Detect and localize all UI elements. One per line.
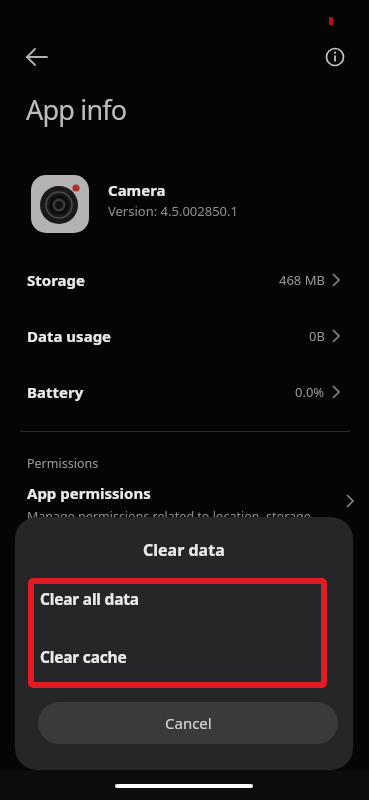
staticText: App info xyxy=(26,91,127,128)
staticText: Data usage xyxy=(27,326,112,346)
staticText: 468 MB xyxy=(279,271,325,289)
button[interactable]: App permissions xyxy=(0,472,369,528)
staticText: Clear all data xyxy=(40,588,139,609)
staticText: Cancel xyxy=(165,713,212,733)
staticText: Clear data xyxy=(143,539,225,561)
button[interactable] xyxy=(17,44,57,70)
staticText: Permissions xyxy=(27,455,99,472)
staticText: Storage xyxy=(27,270,85,290)
button[interactable]: Clear cache xyxy=(15,630,353,686)
staticText: App permissions xyxy=(27,483,151,503)
staticText: Version: 4.5.002850.1 xyxy=(108,202,238,220)
staticText: Battery xyxy=(27,382,84,402)
staticText: Manage permissions related to location, … xyxy=(27,508,311,525)
button[interactable]: Storage xyxy=(0,252,369,308)
staticText: Camera xyxy=(108,180,166,200)
button[interactable]: Cancel xyxy=(38,702,338,744)
staticText: 0.0% xyxy=(295,383,325,401)
button[interactable] xyxy=(321,43,349,71)
button[interactable]: Clear all data xyxy=(15,572,353,628)
button[interactable]: Data usage xyxy=(0,308,369,364)
staticText: Clear cache xyxy=(40,646,127,667)
staticText: 0B xyxy=(309,327,325,345)
button[interactable]: Battery xyxy=(0,364,369,420)
